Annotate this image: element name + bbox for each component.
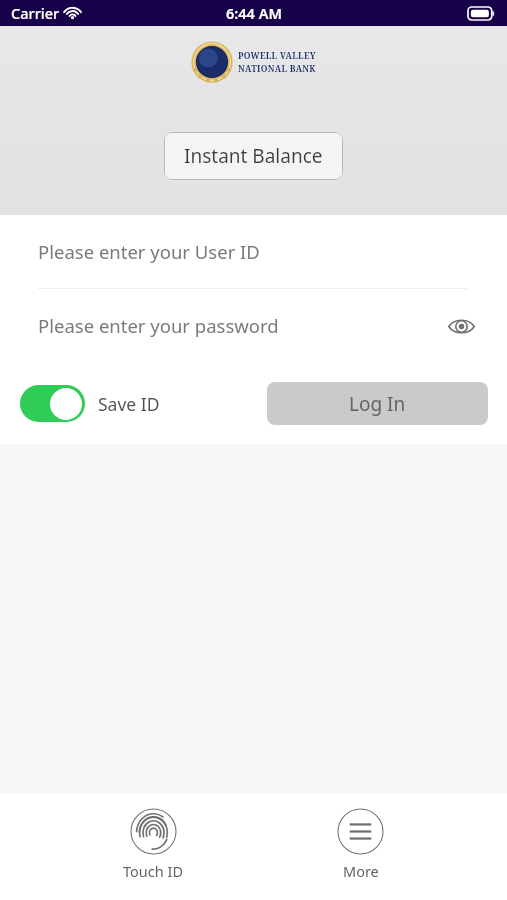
button[interactable]: Touch ID [113, 805, 193, 884]
button[interactable]: Please enter your User ID [0, 215, 507, 288]
staticText: 6:44 AM [226, 3, 282, 23]
button[interactable]: Save ID toggle [20, 385, 85, 422]
staticText: NATIONAL BANK [238, 63, 316, 75]
staticText: POWELL VALLEY [238, 50, 316, 62]
staticText: Save ID [98, 392, 160, 416]
button[interactable]: Instant Balance [164, 132, 343, 180]
staticText: Please enter your password [38, 313, 279, 338]
staticText: More [343, 861, 379, 881]
button[interactable]: Please enter your password [0, 289, 507, 362]
staticText: Instant Balance [184, 143, 323, 169]
staticText: Touch ID [123, 861, 183, 881]
staticText: Log In [349, 391, 406, 417]
staticText: Carrier [11, 3, 60, 23]
button[interactable]: Show password [443, 308, 479, 344]
staticText: Please enter your User ID [38, 239, 260, 264]
button[interactable]: Log In [267, 382, 488, 425]
button[interactable]: More [327, 805, 394, 884]
